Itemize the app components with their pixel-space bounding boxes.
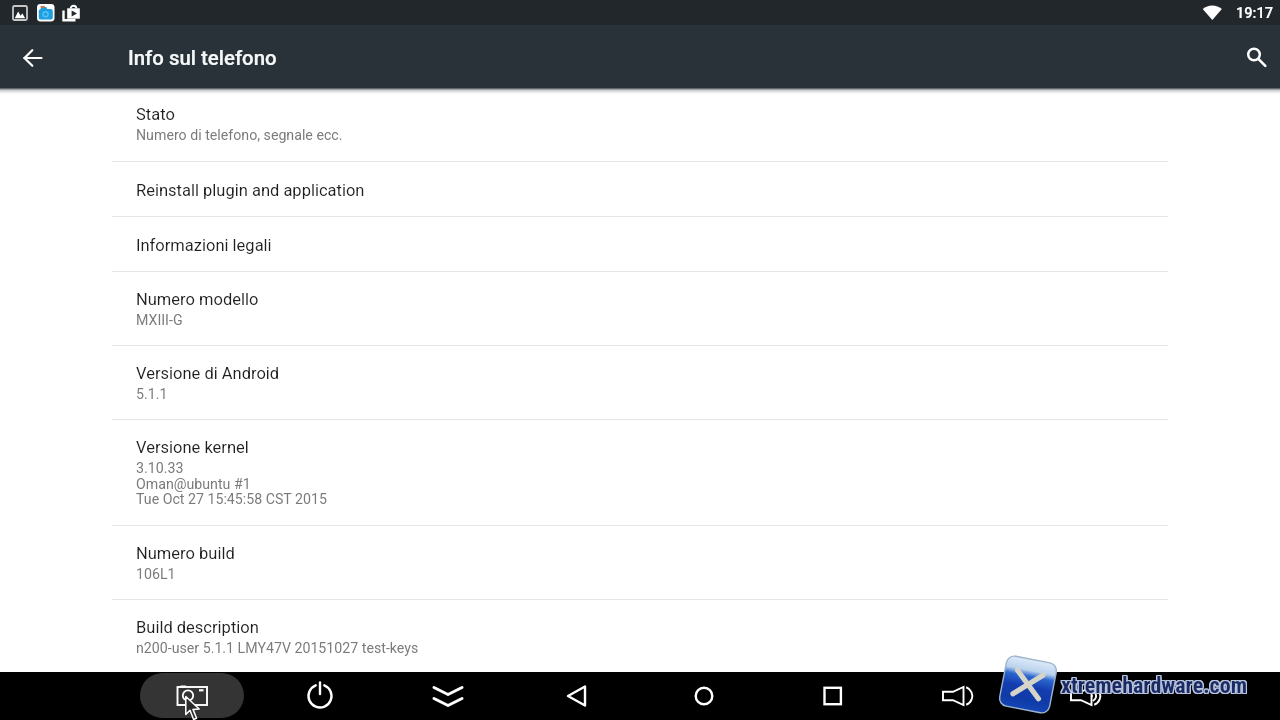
button[interactable]: Screenshot [140, 673, 244, 718]
staticText: xtremehardware.com [1061, 673, 1248, 699]
staticText: xtremehardware.com [1060, 673, 1247, 699]
staticText: n200-user 5.1.1 LMY47V 20151027 test-key… [136, 640, 419, 657]
staticText: xtremehardware.com [1062, 674, 1249, 700]
button[interactable]: Versione kernel [0, 420, 1280, 525]
button[interactable]: Search [1226, 30, 1280, 86]
button[interactable]: Reinstall plugin and application [0, 162, 1280, 216]
button[interactable]: Informazioni legali [0, 217, 1280, 271]
staticText: xtremehardware.com [1061, 672, 1248, 698]
button[interactable]: Stato [0, 88, 1280, 161]
staticText: Stato [136, 105, 175, 124]
staticText: MXIII-G [136, 312, 183, 329]
staticText: Build description [136, 618, 259, 637]
staticText: Reinstall plugin and application [136, 181, 365, 200]
staticText: xtremehardware.com [1061, 674, 1248, 700]
staticText: Oman@ubuntu #1 [136, 476, 251, 493]
staticText: Numero di telefono, segnale ecc. [136, 127, 343, 144]
button[interactable]: Numero modello [0, 272, 1280, 345]
staticText: Tue Oct 27 15:45:58 CST 2015 [136, 491, 327, 508]
staticText: Versione di Android [136, 364, 280, 383]
staticText: 106L1 [136, 566, 176, 583]
staticText: 3.10.33 [136, 460, 184, 477]
button[interactable]: Build description [0, 600, 1280, 672]
button[interactable]: Numero build [0, 526, 1280, 599]
staticText: Versione kernel [136, 438, 249, 457]
staticText: Numero modello [136, 290, 259, 309]
staticText: 19:17 [1236, 4, 1274, 21]
staticText: Info sul telefono [128, 46, 277, 70]
button[interactable]: Versione di Android [0, 346, 1280, 419]
staticText: xtremehardware.com [1062, 673, 1249, 699]
staticText: Numero build [136, 544, 235, 563]
staticText: xtremehardware.com [1060, 672, 1247, 698]
staticText: xtremehardware.com [1060, 674, 1247, 700]
staticText: Informazioni legali [136, 236, 272, 255]
staticText: xtremehardware.com [1062, 672, 1249, 698]
button[interactable]: Back [5, 30, 61, 86]
staticText: 5.1.1 [136, 386, 168, 403]
